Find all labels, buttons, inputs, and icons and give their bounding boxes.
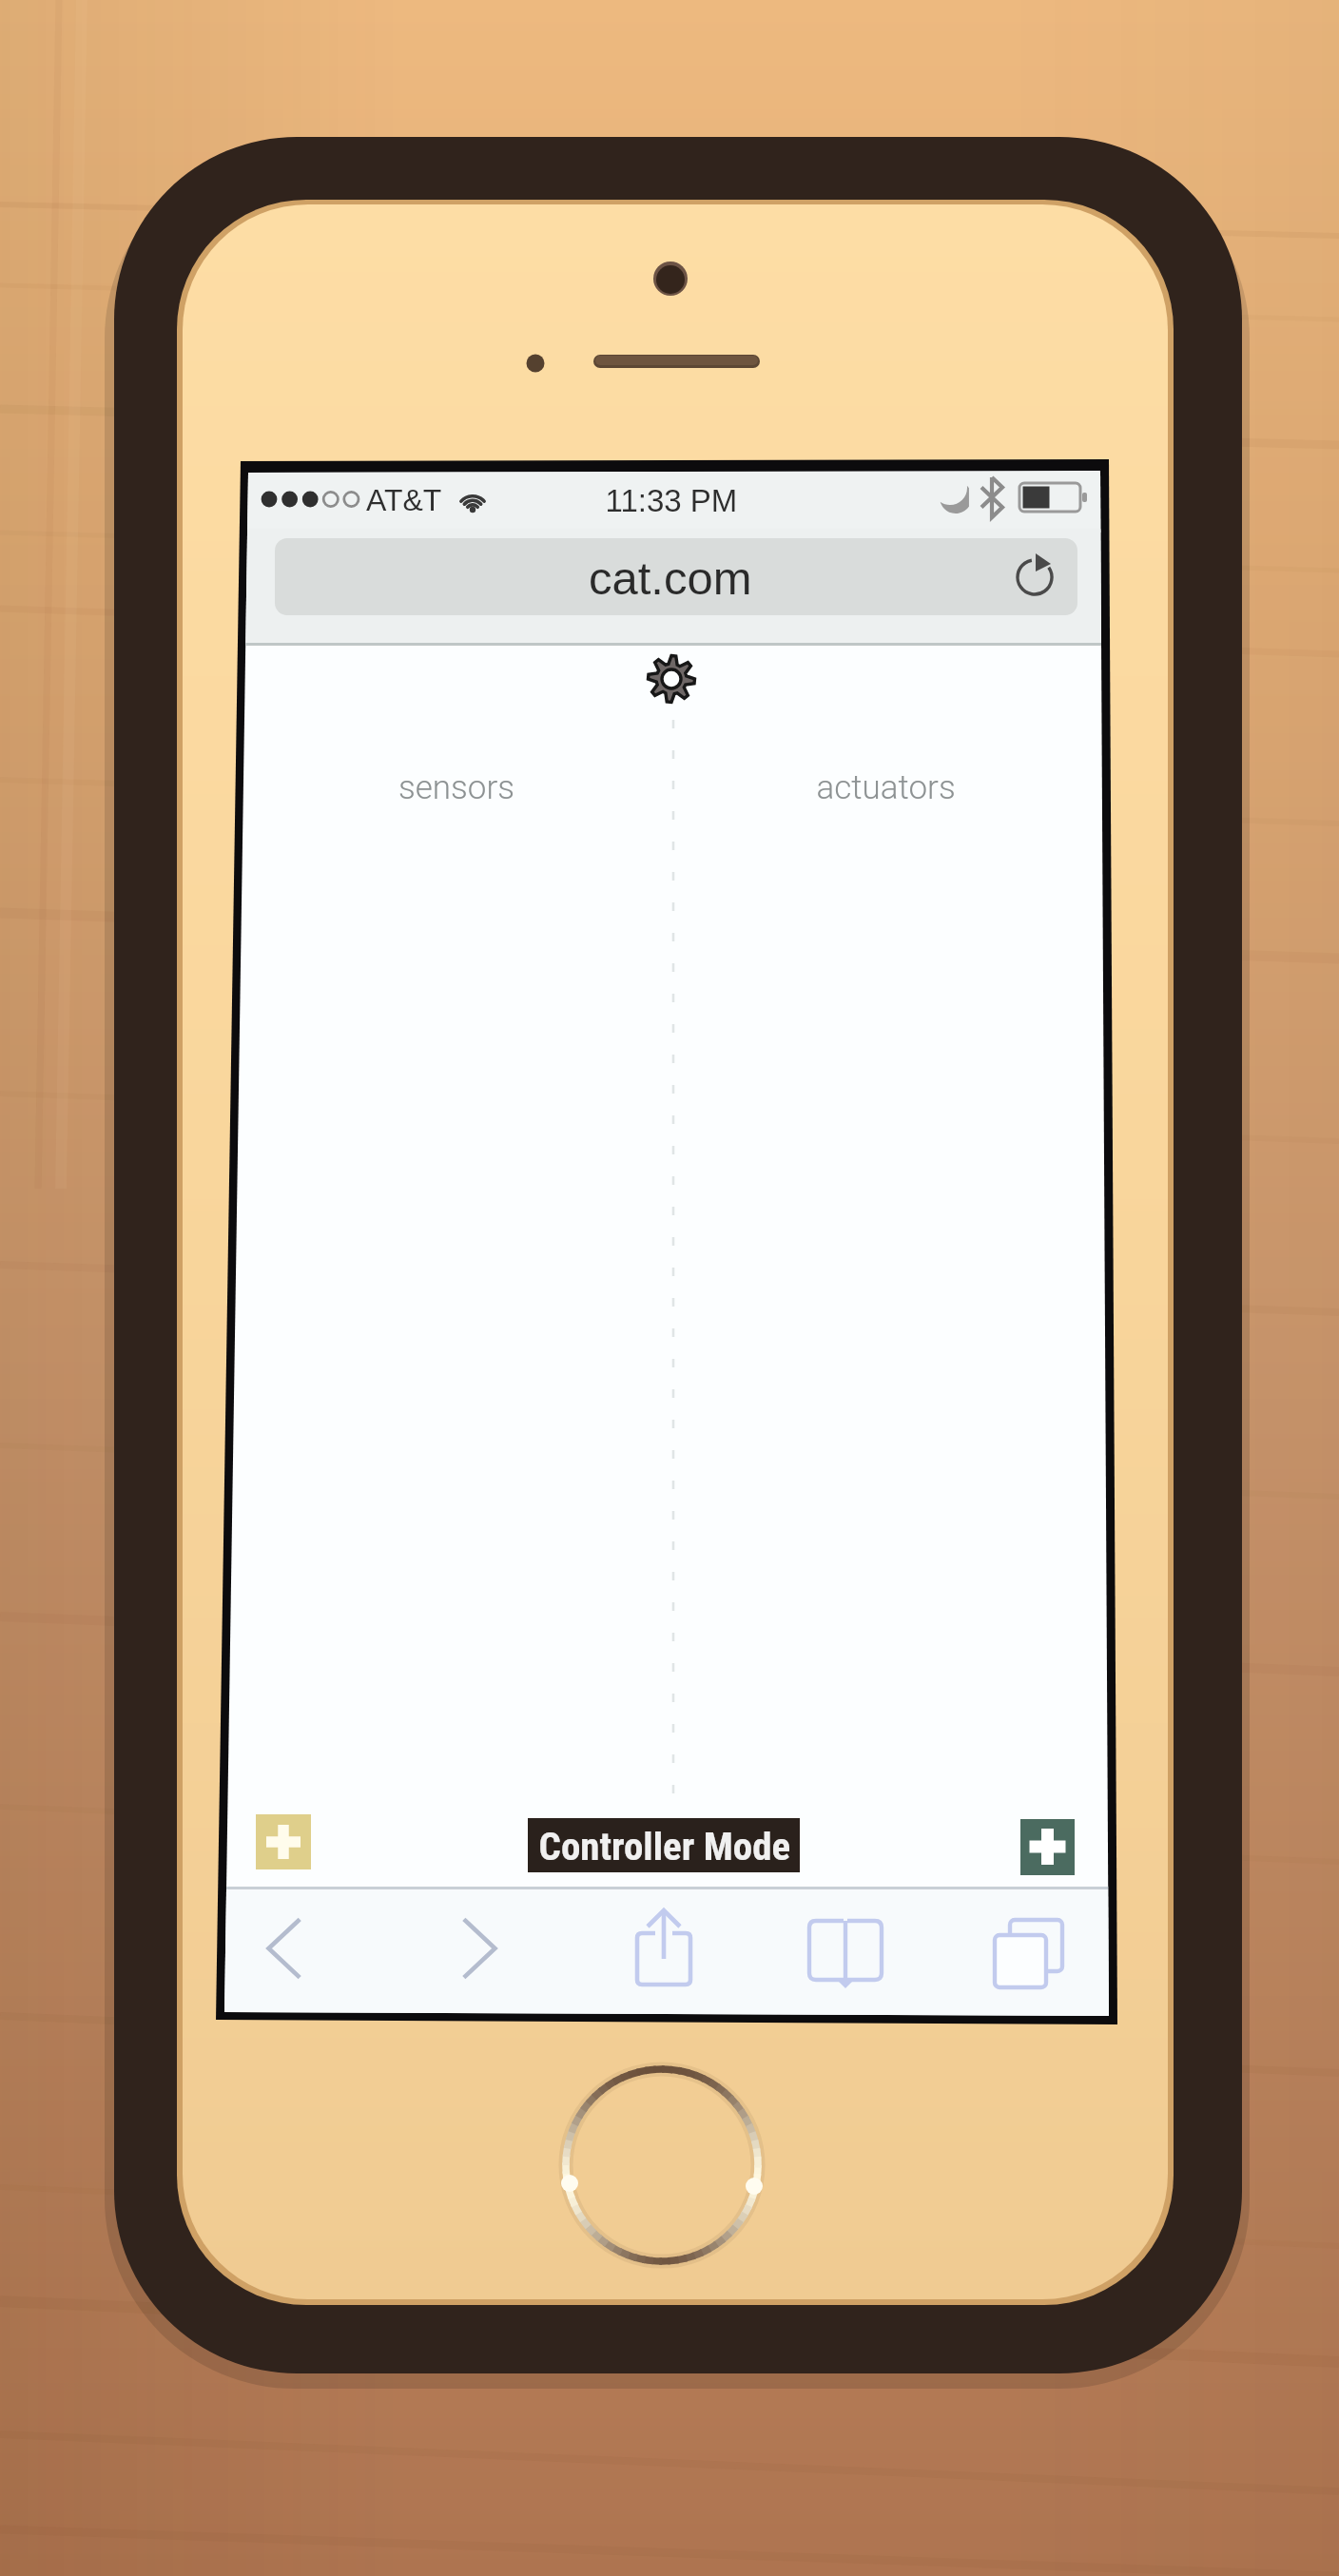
button[interactable]: Address bar, cat.com [275, 538, 1077, 615]
button[interactable]: Bookmarks [804, 1902, 889, 1995]
button[interactable]: Tabs [980, 1902, 1065, 1995]
button[interactable]: Share [623, 1902, 708, 1995]
button[interactable]: Settings [643, 650, 700, 707]
button[interactable]: Controller Mode [528, 1818, 800, 1872]
button[interactable]: Back [245, 1902, 331, 1995]
button[interactable]: Reload page [1010, 552, 1061, 604]
button[interactable]: Add sensor [247, 1806, 320, 1878]
button[interactable]: Forward [442, 1902, 528, 1995]
button[interactable]: Add actuator [1012, 1811, 1084, 1883]
